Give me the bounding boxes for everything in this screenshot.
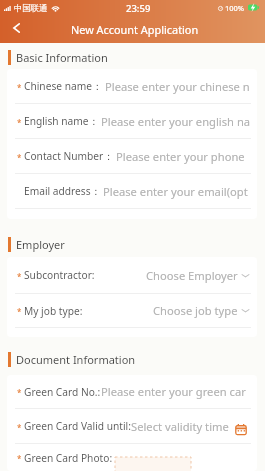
staticText: Green Card Valid until: (24, 419, 131, 433)
staticText: * (17, 306, 22, 317)
staticText: Contact Number： (24, 149, 114, 163)
button[interactable]: * (7, 257, 257, 293)
staticText: * (17, 387, 22, 398)
staticText: Document Information (16, 352, 136, 367)
staticText: My job type: (24, 304, 83, 318)
staticText: Please enter your phone (116, 149, 245, 164)
staticText: Green Card No.: (24, 385, 101, 399)
button[interactable]: * (7, 294, 257, 327)
staticText: Choose job type (153, 303, 238, 318)
staticText: Subcontractor: (24, 268, 95, 282)
button[interactable]: * (7, 104, 257, 138)
staticText: Select validity time (131, 419, 229, 434)
staticText: * (17, 271, 22, 282)
staticText: * (17, 117, 22, 128)
staticText: Green Card Photo: (24, 451, 113, 465)
staticText: Chinese name： (24, 79, 103, 93)
staticText: * (17, 82, 22, 93)
staticText: * (17, 422, 22, 433)
staticText: New Account Application (71, 22, 199, 37)
staticText: * (17, 152, 22, 163)
button[interactable]: * (7, 69, 257, 103)
staticText: * (17, 453, 22, 464)
staticText: Please enter your green car (101, 384, 246, 399)
staticText: 中国联通 (14, 3, 48, 14)
staticText: Please enter your email(opt (103, 184, 248, 199)
button[interactable]: Upload Green Card Photo (115, 457, 191, 471)
button[interactable]: * (7, 409, 257, 443)
staticText: Please enter your english na (101, 114, 250, 129)
staticText: 100% (225, 3, 245, 13)
staticText: Employer (16, 237, 65, 252)
button[interactable]: Back (0, 14, 33, 41)
staticText: 23:59 (126, 2, 151, 15)
staticText: Basic Information (16, 50, 108, 65)
staticText: Please enter your chinese n (105, 79, 250, 94)
staticText: Choose Employer (146, 268, 238, 283)
button[interactable]: * (7, 139, 257, 173)
staticText: English name： (24, 114, 99, 128)
staticText: Email address： (24, 184, 101, 198)
button[interactable]: * (7, 375, 257, 408)
button[interactable]: Email address： (7, 174, 257, 208)
